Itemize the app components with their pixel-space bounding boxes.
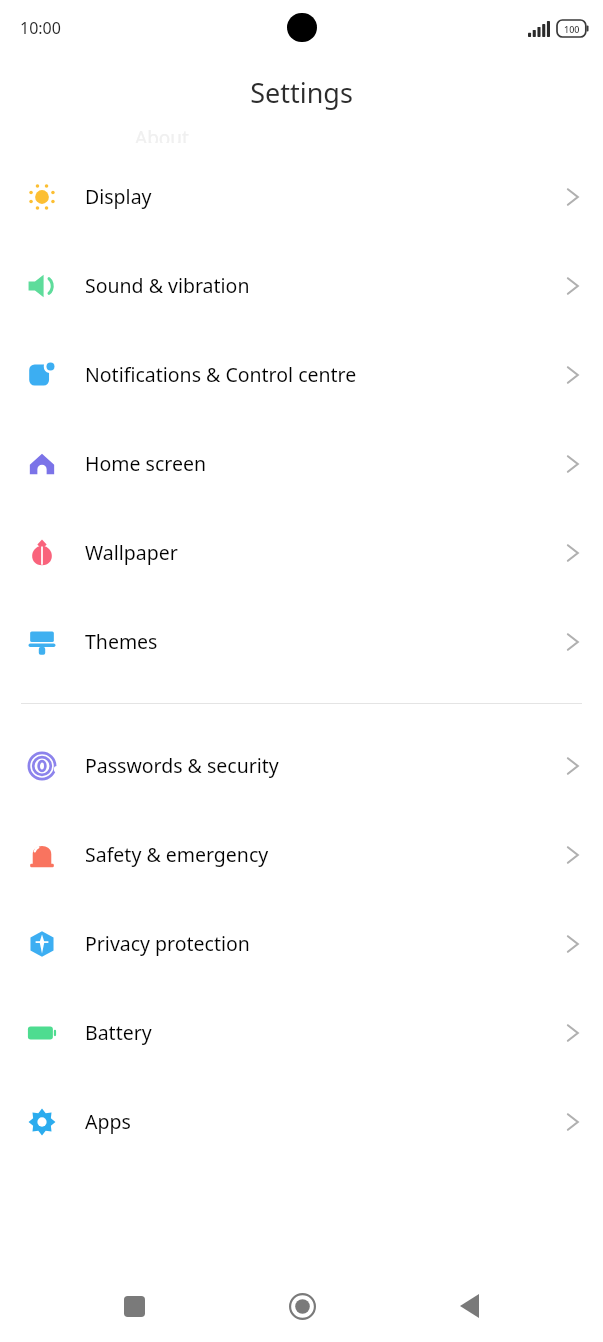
button[interactable]: Themes [0,597,603,686]
staticText: Display [85,183,549,210]
staticText: Passwords & security [85,752,549,779]
staticText: 10:00 [20,17,61,39]
staticText: Notifications & Control centre [85,361,549,388]
staticText: Wallpaper [85,539,549,566]
staticText: Themes [85,628,549,655]
button[interactable]: Battery [0,988,603,1077]
staticText: Sound & vibration [85,272,549,299]
button[interactable]: Wallpaper [0,508,603,597]
button[interactable]: Back [436,1273,502,1339]
button[interactable]: Privacy protection [0,899,603,988]
button[interactable]: Display [0,152,603,241]
staticText: Apps [85,1108,549,1135]
button[interactable]: Passwords & security [0,721,603,810]
button[interactable]: Sound & vibration [0,241,603,330]
button[interactable]: Notifications & Control centre [0,330,603,419]
staticText: Safety & emergency [85,841,549,868]
staticText: Home screen [85,450,549,477]
staticText: Settings [250,74,353,111]
staticText: About [135,125,189,143]
staticText: Battery [85,1019,549,1046]
button[interactable]: Home screen [0,419,603,508]
staticText: Privacy protection [85,930,549,957]
button[interactable]: Apps [0,1077,603,1166]
button[interactable]: Home [269,1273,335,1339]
staticText: 100 [564,23,580,35]
button[interactable]: Recent apps [101,1273,167,1339]
button[interactable]: Safety & emergency [0,810,603,899]
